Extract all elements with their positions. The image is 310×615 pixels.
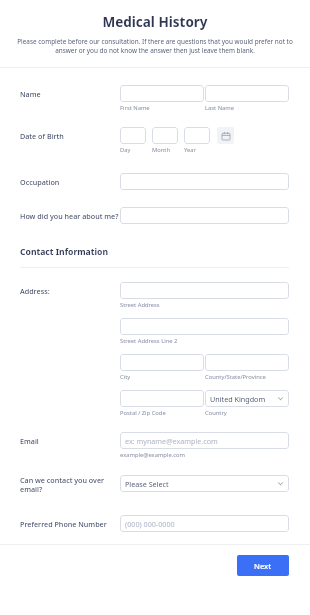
button[interactable]: United Kingdom (205, 390, 289, 407)
button[interactable]: First Name (120, 85, 204, 102)
staticText: Please complete before our consultation.… (12, 37, 298, 55)
button[interactable]: Please Select (120, 475, 289, 492)
button[interactable]: Day (120, 127, 146, 144)
button[interactable]: Street Address Line 2 (120, 318, 289, 335)
staticText: Date of Birth (20, 131, 120, 141)
button[interactable]: Month (152, 127, 178, 144)
button[interactable]: Street Address (120, 282, 289, 299)
staticText: City (120, 373, 205, 381)
button[interactable]: Year (184, 127, 210, 144)
staticText: Medical History (0, 13, 310, 31)
staticText: County/State/Province (205, 373, 266, 381)
staticText: ex: myname@example.com (125, 436, 218, 446)
staticText: Postal / Zip Code (120, 409, 205, 417)
button[interactable]: City (120, 354, 204, 371)
staticText: Address: (20, 286, 120, 296)
staticText: Street Address Line 2 (120, 337, 178, 345)
button[interactable]: Choose date (217, 127, 234, 144)
staticText: Street Address (120, 301, 160, 309)
staticText: First Name (120, 104, 205, 112)
staticText: example@example.com (120, 451, 185, 459)
staticText: Last Name (205, 104, 235, 112)
staticText: Preferred Phone Number (20, 519, 120, 529)
button[interactable]: Last Name (205, 85, 289, 102)
staticText: Contact Information (20, 246, 109, 258)
button[interactable]: Occupation (120, 173, 289, 190)
staticText: United Kingdom (210, 394, 277, 404)
button[interactable]: Email (120, 432, 289, 449)
staticText: Occupation (20, 177, 120, 187)
staticText: Can we contact you over email? (20, 475, 120, 495)
staticText: Year (184, 146, 196, 154)
button[interactable]: Preferred Phone Number (120, 515, 289, 532)
staticText: Name (20, 89, 120, 99)
staticText: Country (205, 409, 227, 417)
staticText: Please Select (125, 479, 277, 489)
button[interactable]: Next (237, 555, 289, 576)
staticText: Day (120, 146, 152, 154)
staticText: Email (20, 436, 120, 446)
button[interactable]: Postal / Zip Code (120, 390, 204, 407)
staticText: Month (152, 146, 184, 154)
staticText: How did you hear about me? (20, 211, 120, 221)
staticText: Next (254, 561, 272, 571)
button[interactable]: County/State/Province (205, 354, 289, 371)
staticText: (000) 000-0000 (125, 519, 175, 529)
button[interactable]: How did you hear about me (120, 207, 289, 224)
